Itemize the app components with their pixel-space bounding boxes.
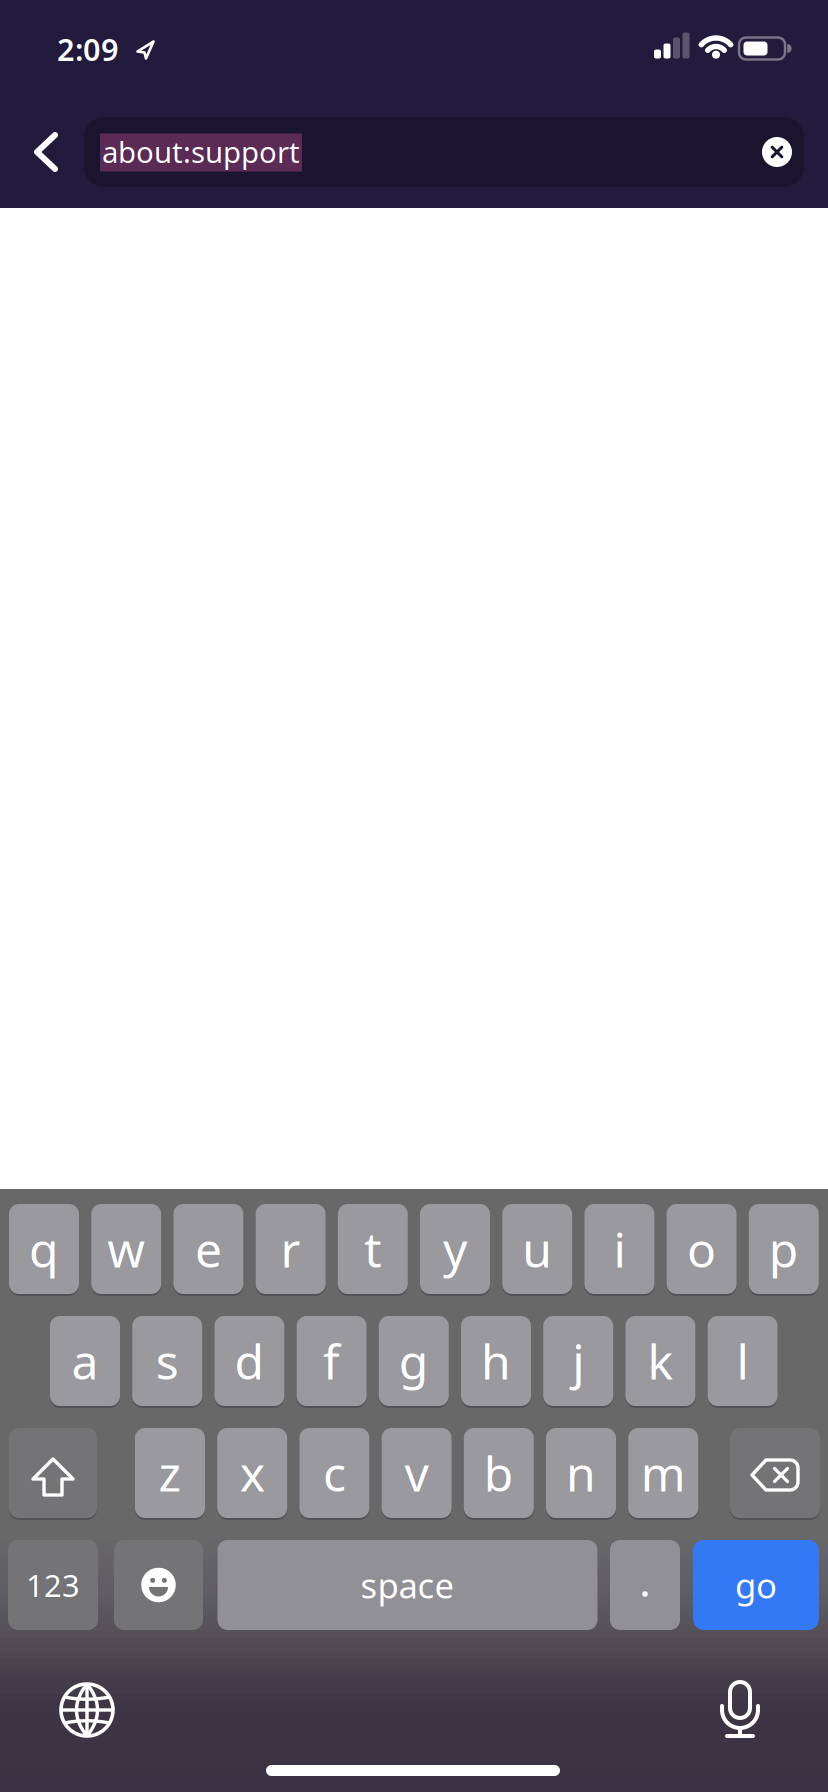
button[interactable]: o xyxy=(667,1204,737,1294)
button[interactable]: s xyxy=(132,1316,202,1406)
staticText: about:support xyxy=(102,132,300,171)
button[interactable]: h xyxy=(461,1316,531,1406)
button[interactable]: p xyxy=(749,1204,819,1294)
button[interactable]: u xyxy=(502,1204,572,1294)
staticText: u xyxy=(522,1217,552,1281)
button[interactable]: Emoji xyxy=(114,1540,203,1630)
button[interactable]: b xyxy=(464,1428,534,1518)
staticText: h xyxy=(481,1329,511,1393)
staticText: y xyxy=(443,1217,467,1281)
button[interactable]: g xyxy=(379,1316,449,1406)
button[interactable]: Period xyxy=(610,1540,680,1630)
staticText: w xyxy=(107,1217,145,1281)
staticText: d xyxy=(234,1329,264,1393)
button[interactable]: d xyxy=(214,1316,284,1406)
button[interactable]: go xyxy=(693,1540,819,1630)
staticText: m xyxy=(641,1441,686,1505)
staticText: o xyxy=(687,1217,716,1281)
staticText: j xyxy=(572,1329,584,1393)
button[interactable]: x xyxy=(217,1428,287,1518)
button[interactable]: y xyxy=(420,1204,490,1294)
staticText: q xyxy=(29,1217,59,1281)
button[interactable]: Next keyboard xyxy=(59,1682,115,1738)
staticText: a xyxy=(71,1329,98,1393)
button[interactable]: space xyxy=(217,1540,597,1630)
button[interactable]: Dictate xyxy=(720,1680,760,1738)
button[interactable]: j xyxy=(543,1316,613,1406)
button[interactable]: v xyxy=(382,1428,452,1518)
staticText: f xyxy=(323,1329,340,1393)
staticText: t xyxy=(364,1217,381,1281)
button[interactable]: i xyxy=(584,1204,654,1294)
button[interactable]: n xyxy=(546,1428,616,1518)
staticText: 2:09 xyxy=(57,29,119,69)
button[interactable]: Clear text xyxy=(762,137,792,167)
staticText: c xyxy=(323,1441,346,1505)
button[interactable]: 123 xyxy=(8,1540,98,1630)
staticText: i xyxy=(613,1217,625,1281)
staticText: g xyxy=(399,1329,429,1393)
button[interactable]: c xyxy=(299,1428,369,1518)
staticText: 123 xyxy=(26,1565,80,1605)
button[interactable]: Delete xyxy=(730,1428,820,1518)
staticText: p xyxy=(769,1217,799,1281)
staticText: n xyxy=(566,1441,596,1505)
staticText: space xyxy=(360,1562,454,1608)
button[interactable]: Back xyxy=(32,131,60,173)
button[interactable]: z xyxy=(135,1428,205,1518)
staticText: x xyxy=(240,1441,265,1505)
button[interactable]: f xyxy=(297,1316,367,1406)
button[interactable]: Shift xyxy=(9,1428,97,1518)
staticText: l xyxy=(737,1329,749,1393)
button[interactable]: e xyxy=(173,1204,243,1294)
button[interactable]: about:support xyxy=(84,117,804,187)
button[interactable]: q xyxy=(9,1204,79,1294)
button[interactable]: m xyxy=(628,1428,698,1518)
staticText: v xyxy=(405,1441,429,1505)
button[interactable]: l xyxy=(708,1316,778,1406)
staticText: r xyxy=(281,1217,301,1281)
staticText: b xyxy=(484,1441,514,1505)
staticText: z xyxy=(158,1441,181,1505)
button[interactable]: a xyxy=(50,1316,120,1406)
staticText: s xyxy=(156,1329,179,1393)
button[interactable]: w xyxy=(91,1204,161,1294)
button[interactable]: r xyxy=(256,1204,326,1294)
button[interactable]: t xyxy=(338,1204,408,1294)
button[interactable]: k xyxy=(625,1316,695,1406)
staticText: go xyxy=(735,1562,777,1608)
staticText: e xyxy=(195,1217,222,1281)
staticText: k xyxy=(647,1329,673,1393)
